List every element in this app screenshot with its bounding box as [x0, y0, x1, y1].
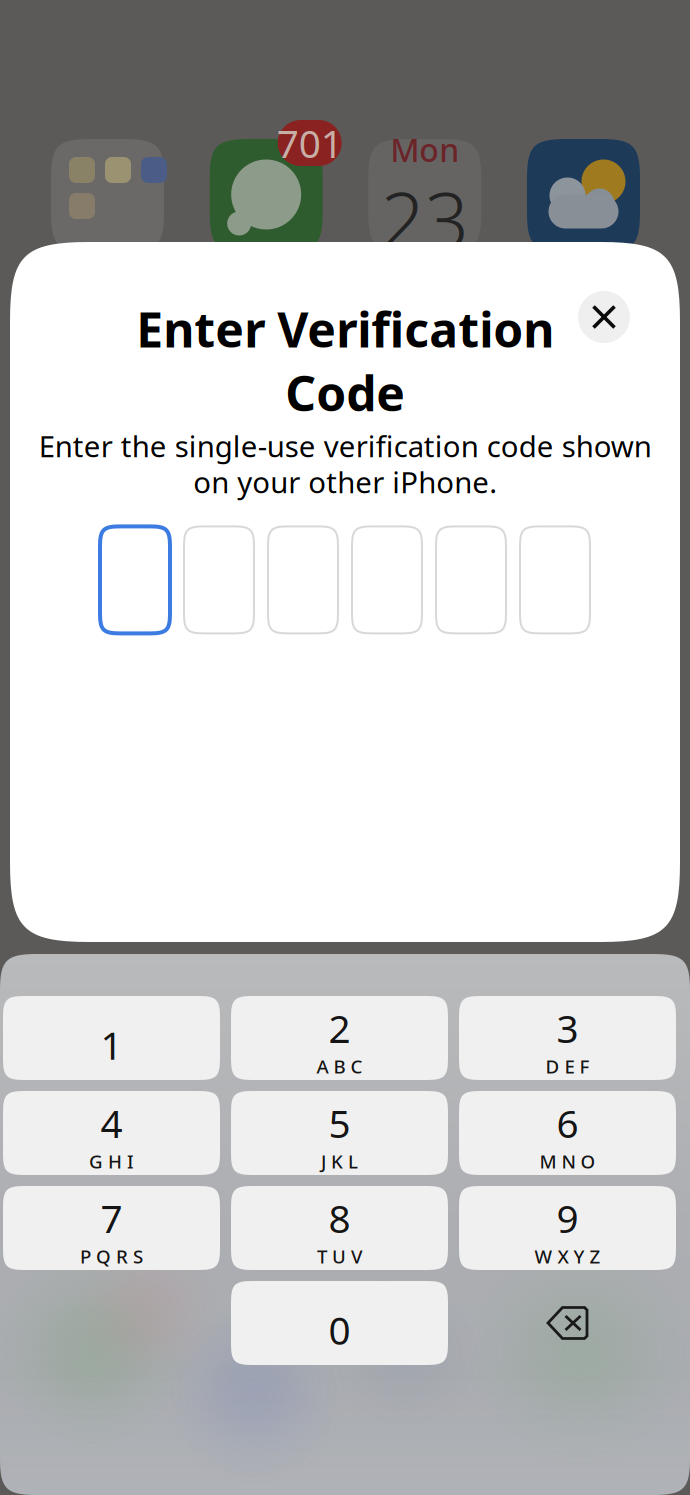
staticText: 3 [556, 1002, 578, 1054]
staticText: 4 [100, 1097, 122, 1149]
staticText: A B C [316, 1054, 362, 1079]
staticText: 701 [277, 117, 343, 169]
staticText: 8 [328, 1192, 350, 1244]
staticText: Enter the single-use verification code s… [38, 426, 651, 501]
staticText: 0 [328, 1304, 350, 1355]
staticText: M N O [539, 1149, 595, 1174]
staticText: 1 [100, 1019, 122, 1070]
button[interactable]: 9 [459, 1186, 676, 1270]
staticText: G H I [89, 1149, 134, 1174]
staticText: Mon [390, 128, 459, 171]
staticText: 5 [328, 1097, 350, 1149]
button[interactable]: Delete [459, 1281, 676, 1365]
staticText: T U V [317, 1244, 362, 1269]
button[interactable]: 7 [3, 1186, 220, 1270]
button[interactable]: 0 [231, 1281, 448, 1365]
button[interactable]: 6 [459, 1091, 676, 1175]
staticText: 2 [328, 1002, 350, 1054]
button[interactable]: 4 [3, 1091, 220, 1175]
button[interactable]: Close [578, 291, 630, 343]
staticText: 6 [556, 1097, 578, 1149]
staticText: 7 [100, 1192, 122, 1244]
staticText: 23 [381, 167, 469, 270]
button[interactable]: 5 [231, 1091, 448, 1175]
button[interactable]: 8 [231, 1186, 448, 1270]
staticText: Enter Verification Code [136, 297, 554, 424]
staticText: D E F [545, 1054, 589, 1079]
button[interactable]: 2 [231, 996, 448, 1080]
staticText: 9 [556, 1192, 578, 1244]
staticText: P Q R S [80, 1244, 143, 1269]
staticText: W X Y Z [534, 1244, 600, 1269]
staticText: J K L [321, 1149, 358, 1174]
button[interactable]: 1 [3, 996, 220, 1080]
button[interactable]: 3 [459, 996, 676, 1080]
